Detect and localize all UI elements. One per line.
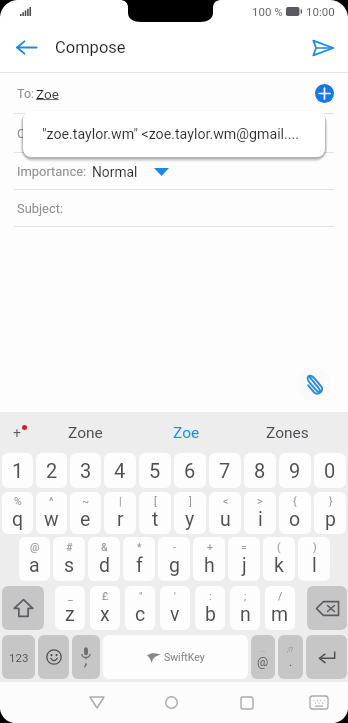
staticText: w bbox=[44, 508, 59, 531]
button[interactable]: ^ bbox=[36, 492, 67, 534]
staticText: + bbox=[13, 425, 21, 441]
button[interactable]: 7 bbox=[209, 453, 241, 488]
button[interactable]: ( bbox=[263, 537, 295, 581]
button[interactable]: | bbox=[104, 492, 136, 534]
button[interactable]: Emoji bbox=[38, 635, 69, 679]
staticText: } bbox=[329, 495, 333, 507]
staticText: m bbox=[271, 603, 289, 626]
staticText: n bbox=[240, 603, 251, 626]
button[interactable]: + bbox=[193, 537, 225, 581]
button[interactable]: Importance: bbox=[0, 153, 348, 190]
staticText: % bbox=[14, 495, 22, 507]
staticText: 9 bbox=[289, 459, 301, 482]
button[interactable]: Numbers bbox=[2, 635, 35, 679]
staticText: e bbox=[80, 508, 91, 531]
button[interactable]: = bbox=[228, 537, 260, 581]
staticText: h bbox=[204, 554, 215, 577]
button[interactable]: : bbox=[195, 586, 225, 630]
staticText: c bbox=[135, 603, 146, 626]
button[interactable]: Space bbox=[103, 635, 248, 679]
staticText: Zone bbox=[68, 424, 103, 442]
button[interactable]: * bbox=[123, 537, 155, 581]
staticText: ^ bbox=[49, 495, 54, 507]
staticText: 6 bbox=[184, 459, 196, 482]
button[interactable] bbox=[2, 586, 44, 630]
button[interactable]: 5 bbox=[139, 453, 171, 488]
button[interactable]: Hide keyboard bbox=[299, 682, 339, 723]
button[interactable]: > bbox=[244, 492, 276, 534]
staticText: 1 bbox=[12, 459, 24, 482]
staticText: y bbox=[185, 508, 195, 531]
button[interactable]: Voice input bbox=[72, 635, 100, 679]
button[interactable]: 0 bbox=[314, 453, 346, 488]
button[interactable]: - bbox=[158, 537, 190, 581]
button[interactable]: Back bbox=[0, 22, 52, 73]
button[interactable]: 1 bbox=[2, 453, 33, 488]
button[interactable]: Keyboard options bbox=[0, 412, 34, 453]
staticText: f bbox=[136, 554, 143, 577]
button[interactable]: Enter bbox=[306, 635, 347, 679]
button[interactable]: { bbox=[279, 492, 311, 534]
staticText: 123 bbox=[9, 651, 29, 664]
staticText: i bbox=[258, 508, 263, 531]
staticText: 10:00 bbox=[306, 5, 335, 18]
button[interactable]: [ bbox=[139, 492, 171, 534]
staticText: u bbox=[220, 508, 231, 531]
staticText: - bbox=[173, 541, 176, 553]
button[interactable]: "zoe.taylor.wm" <zoe.taylor.wm@gmail.... bbox=[23, 111, 325, 157]
staticText: 2 bbox=[46, 459, 58, 482]
button[interactable]: 6 bbox=[174, 453, 206, 488]
button[interactable]: £ bbox=[90, 586, 120, 630]
button[interactable]: At sign bbox=[251, 635, 275, 679]
button[interactable]: ' bbox=[160, 586, 190, 630]
button[interactable]: ; bbox=[230, 586, 260, 630]
button[interactable]: Zoe bbox=[136, 412, 237, 453]
staticText: £ bbox=[102, 590, 109, 602]
button[interactable]: _ bbox=[55, 586, 85, 630]
staticText: " bbox=[139, 590, 143, 602]
button[interactable]: & bbox=[88, 537, 120, 581]
button[interactable]: Send bbox=[296, 22, 348, 73]
staticText: ' bbox=[174, 590, 176, 602]
staticText: ] bbox=[189, 495, 192, 507]
button[interactable]: Recent apps bbox=[227, 682, 267, 723]
staticText: Normal bbox=[92, 164, 138, 180]
button[interactable] bbox=[307, 586, 347, 630]
button[interactable]: # bbox=[53, 537, 85, 581]
button[interactable]: < bbox=[209, 492, 241, 534]
button[interactable]: " bbox=[125, 586, 155, 630]
button[interactable]: @ bbox=[19, 537, 50, 581]
button[interactable]: Home bbox=[151, 682, 191, 723]
staticText: Zones bbox=[266, 424, 309, 442]
button[interactable]: 4 bbox=[104, 453, 136, 488]
button[interactable]: Zone bbox=[34, 412, 136, 453]
button[interactable]: Subject: bbox=[0, 190, 348, 227]
button[interactable]: } bbox=[314, 492, 346, 534]
button[interactable]: / bbox=[265, 586, 295, 630]
button[interactable]: 9 bbox=[279, 453, 311, 488]
button[interactable]: 8 bbox=[244, 453, 276, 488]
staticText: + bbox=[207, 541, 213, 553]
button[interactable]: Period bbox=[278, 635, 303, 679]
button[interactable]: Add recipient bbox=[315, 84, 334, 103]
staticText: z bbox=[65, 603, 75, 626]
staticText: r bbox=[117, 508, 124, 531]
button[interactable]: ) bbox=[298, 537, 330, 581]
button[interactable]: Zones bbox=[237, 412, 338, 453]
staticText: s bbox=[64, 554, 75, 577]
staticText: ; bbox=[244, 590, 247, 602]
staticText: To: bbox=[17, 86, 35, 101]
staticText: : bbox=[209, 590, 212, 602]
button[interactable]: ~ bbox=[70, 492, 101, 534]
button[interactable]: Attach file bbox=[296, 367, 330, 401]
staticText: @ bbox=[30, 541, 40, 553]
staticText: k bbox=[274, 554, 284, 577]
button[interactable]: 2 bbox=[36, 453, 67, 488]
staticText: p bbox=[325, 508, 336, 531]
button[interactable]: 3 bbox=[70, 453, 101, 488]
button[interactable]: % bbox=[2, 492, 33, 534]
button[interactable]: Cc: bbox=[0, 114, 348, 153]
staticText: b bbox=[205, 603, 216, 626]
button[interactable]: ] bbox=[174, 492, 206, 534]
button[interactable]: Back bbox=[77, 682, 117, 723]
